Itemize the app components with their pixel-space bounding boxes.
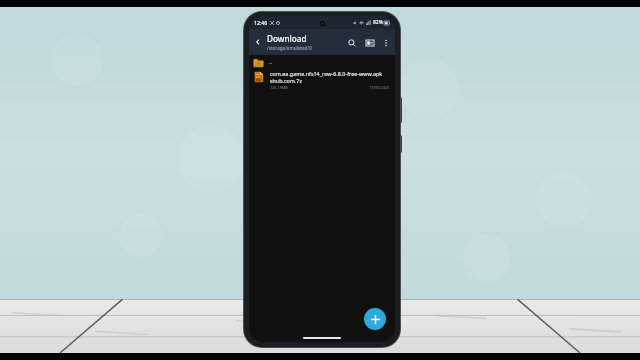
button[interactable]: View mode bbox=[362, 35, 377, 50]
button[interactable]: Back bbox=[251, 35, 265, 49]
staticText: Download bbox=[267, 33, 307, 44]
staticText: 12:46 bbox=[254, 19, 268, 26]
staticText: 82% bbox=[373, 19, 383, 26]
staticText: 126.19MB bbox=[270, 85, 288, 90]
button[interactable]: Download bbox=[267, 33, 312, 51]
button[interactable]: com.ea.game.nfs14_row-6.8.0-free-www.apk bbox=[249, 69, 395, 92]
button[interactable]: More options bbox=[378, 35, 393, 50]
button[interactable]: Search bbox=[344, 35, 359, 50]
staticText: 17/05/2023 bbox=[369, 85, 390, 90]
button[interactable]: .. bbox=[249, 55, 395, 69]
button[interactable]: Add bbox=[364, 308, 386, 330]
staticText: /storage/emulated/0 bbox=[267, 45, 312, 51]
staticText: .. bbox=[269, 58, 273, 66]
staticText: com.ea.game.nfs14_row-6.8.0-free-www.apk bbox=[270, 70, 383, 77]
staticText: shub.com.7z bbox=[270, 77, 302, 84]
